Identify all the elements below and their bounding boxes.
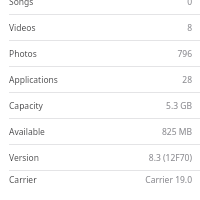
staticText: 825 MB (161, 126, 192, 138)
staticText: 0 (187, 0, 192, 8)
staticText: Capacity (9, 100, 43, 112)
staticText: Available (9, 126, 45, 138)
button[interactable]: Carrier (0, 171, 200, 189)
staticText: Carrier (9, 174, 37, 186)
staticText: 5.3 GB (166, 100, 192, 112)
button[interactable]: Videos (0, 15, 200, 40)
button[interactable]: Capacity (0, 93, 200, 118)
staticText: Photos (9, 48, 37, 60)
staticText: Version (9, 152, 39, 164)
staticText: Songs (9, 0, 34, 8)
button[interactable]: Applications (0, 67, 200, 92)
staticText: Videos (9, 22, 36, 34)
staticText: 796 (177, 48, 192, 60)
staticText: Carrier 19.0 (145, 174, 192, 186)
button[interactable]: Available (0, 119, 200, 144)
staticText: 8.3 (12F70) (148, 152, 192, 164)
button[interactable]: Songs (0, 0, 200, 14)
staticText: 8 (187, 22, 192, 34)
button[interactable]: Version (0, 145, 200, 170)
staticText: 28 (182, 74, 192, 86)
button[interactable]: Photos (0, 41, 200, 66)
staticText: Applications (9, 74, 58, 86)
